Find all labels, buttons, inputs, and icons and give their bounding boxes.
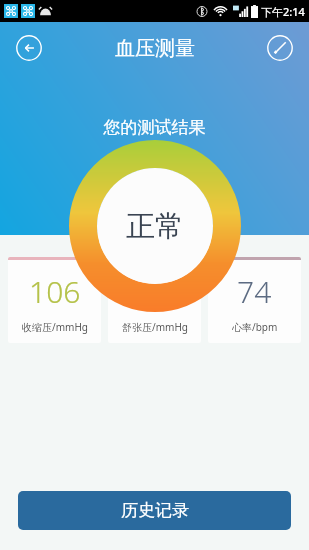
- staticText: 历史记录: [121, 500, 189, 521]
- staticText: 62: [137, 271, 172, 312]
- staticText: 74: [237, 271, 272, 312]
- staticText: 血压测量: [115, 36, 195, 61]
- staticText: 正常: [126, 208, 184, 245]
- staticText: 舒张压/mmHg: [122, 320, 188, 334]
- button[interactable]: 历史记录: [18, 491, 291, 530]
- button[interactable]: 62: [108, 257, 201, 343]
- button[interactable]: 编辑: [265, 33, 295, 63]
- staticText: 106: [29, 271, 81, 312]
- button[interactable]: 正常: [97, 168, 213, 284]
- staticText: 下午2:14: [261, 4, 305, 19]
- staticText: 心率/bpm: [232, 320, 278, 334]
- button[interactable]: 74: [208, 257, 301, 343]
- staticText: 您的测试结果: [0, 117, 309, 138]
- button[interactable]: 返回: [14, 33, 44, 63]
- button[interactable]: 106: [8, 257, 101, 343]
- staticText: 收缩压/mmHg: [22, 320, 88, 334]
